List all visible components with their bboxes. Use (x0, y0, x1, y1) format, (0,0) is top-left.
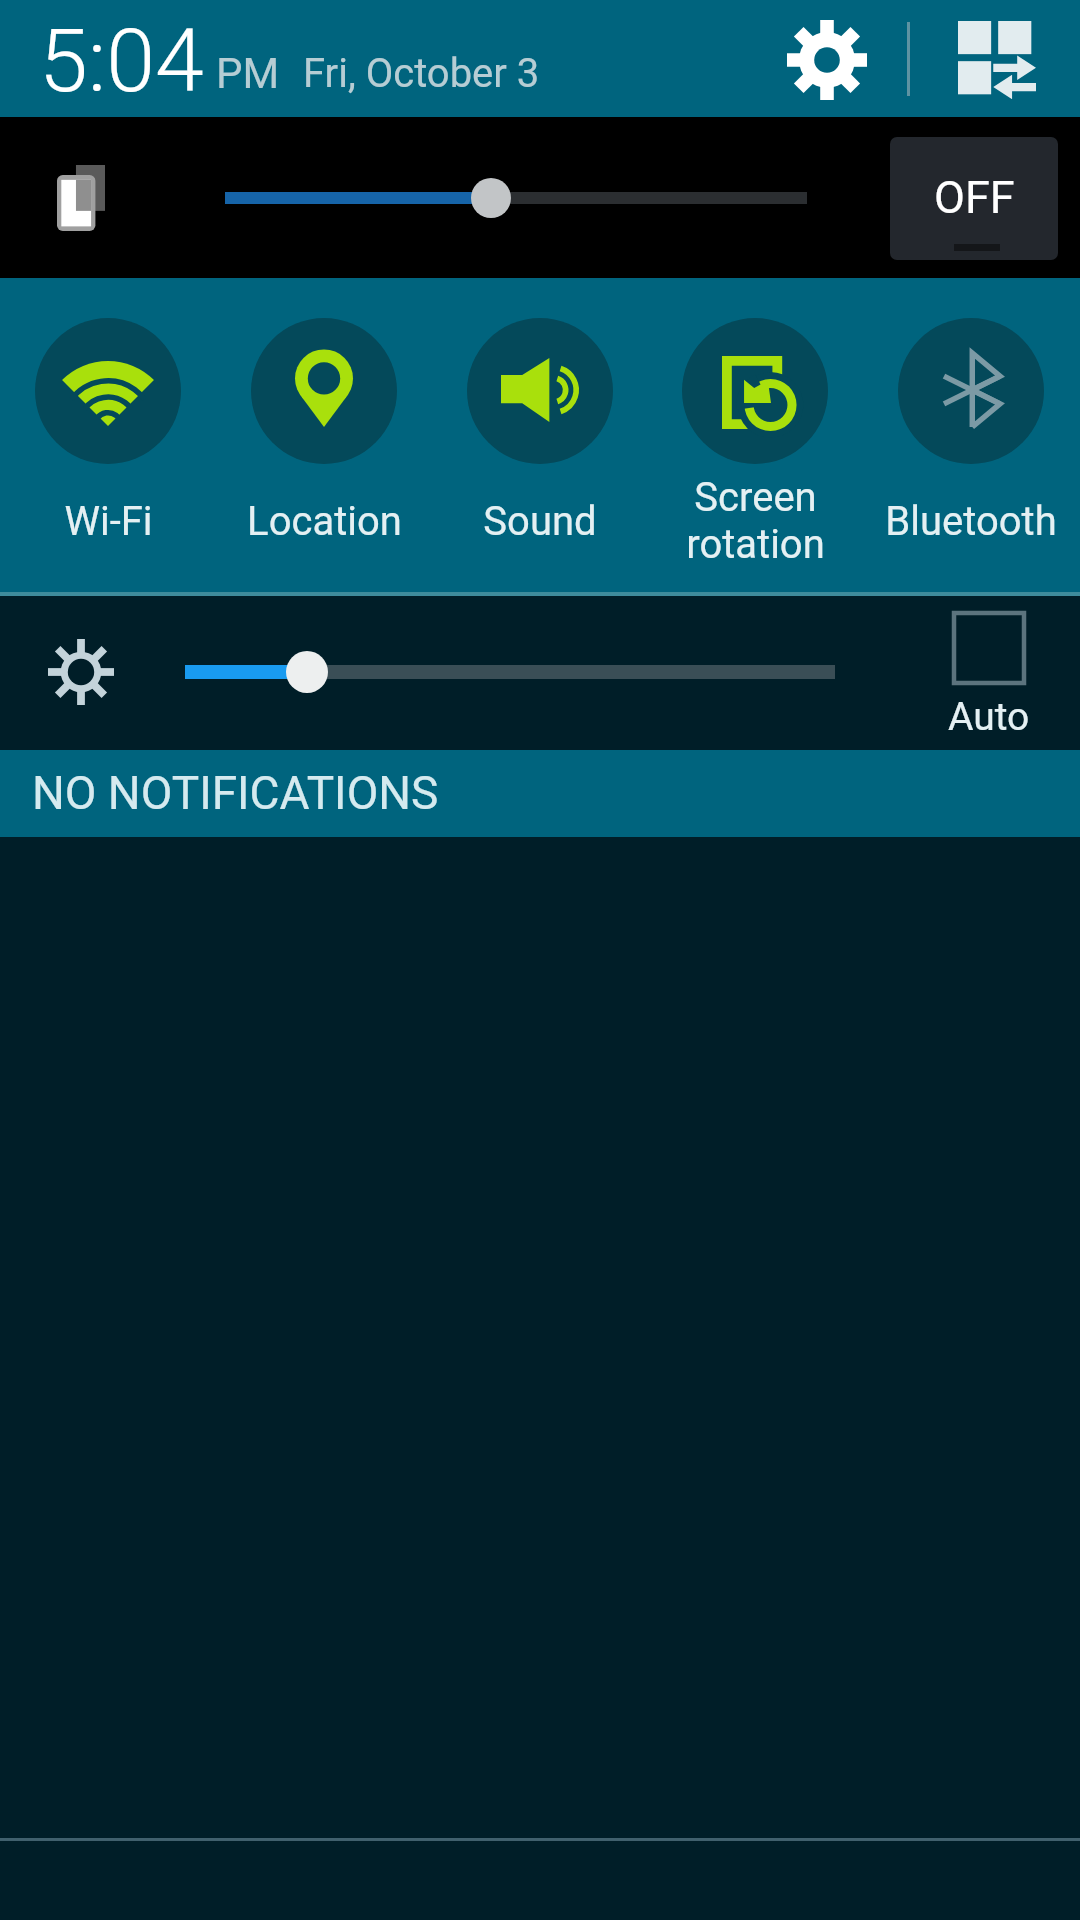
staticText: Sound (483, 498, 597, 545)
staticText: Fri, October 3 (303, 50, 540, 97)
button[interactable]: Screen rotation (647, 278, 863, 592)
button[interactable]: Multi window (31, 148, 131, 248)
staticText: Location (247, 498, 402, 545)
button[interactable]: OFF (890, 137, 1058, 260)
staticText: 5:04 (39, 9, 204, 112)
button[interactable]: Quick settings grid (942, 5, 1052, 115)
staticText: NO NOTIFICATIONS (32, 766, 439, 820)
staticText: Screen rotation (686, 474, 825, 568)
button[interactable]: Settings (772, 5, 882, 115)
button[interactable]: Sound (432, 278, 648, 592)
button[interactable]: Location (216, 278, 432, 592)
staticText: PM (216, 49, 280, 98)
staticText: Auto (948, 694, 1030, 740)
button[interactable]: Wi-Fi (0, 278, 216, 592)
staticText: Bluetooth (885, 498, 1057, 545)
staticText: Wi-Fi (64, 498, 153, 545)
button[interactable]: Bluetooth (863, 278, 1079, 592)
button[interactable]: Auto brightness settings (31, 622, 131, 722)
button[interactable]: Auto (929, 611, 1049, 740)
staticText: OFF (934, 171, 1015, 224)
